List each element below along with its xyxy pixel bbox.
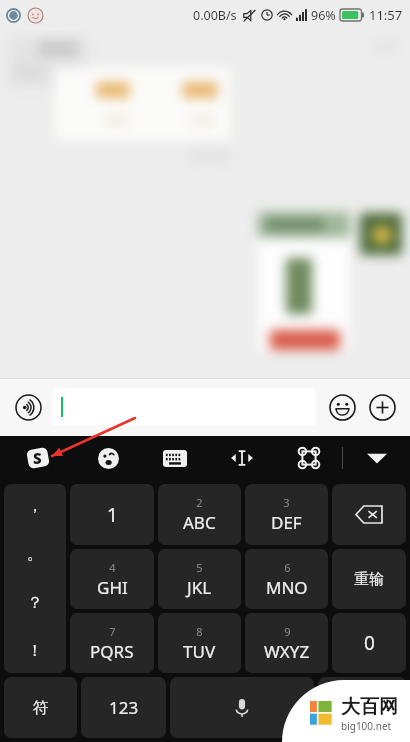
button[interactable]: 7	[70, 613, 154, 673]
staticText: 2	[196, 495, 203, 510]
staticText: 符	[33, 698, 49, 718]
button[interactable]: 符	[4, 677, 77, 738]
button[interactable]: Voice input	[8, 387, 48, 427]
staticText: PQRS	[90, 640, 134, 663]
staticText: big100.net	[341, 719, 392, 733]
staticText: 。	[27, 544, 43, 564]
staticText: 4	[109, 560, 116, 575]
button[interactable]: Keyboard layout	[141, 436, 208, 480]
button[interactable]: Sogou input	[0, 436, 75, 480]
staticText: ！	[27, 641, 43, 661]
button[interactable]: 2	[158, 484, 241, 545]
staticText: WXYZ	[264, 640, 310, 663]
staticText: 3	[283, 495, 290, 510]
staticText: ，	[27, 496, 43, 516]
staticText: 1	[107, 502, 118, 528]
staticText: 大百网	[341, 695, 398, 719]
staticText: 7	[109, 624, 116, 639]
staticText: 123	[109, 696, 139, 719]
button[interactable]: 123	[81, 677, 166, 738]
button[interactable]: Voice input	[170, 677, 314, 738]
staticText: 8	[196, 624, 203, 639]
button[interactable]: 5	[158, 549, 241, 609]
button[interactable]: 1	[70, 484, 154, 545]
button[interactable]: 4	[70, 549, 154, 609]
staticText: 9	[284, 624, 291, 639]
button[interactable]: 8	[158, 613, 241, 673]
button[interactable]: 9	[245, 613, 328, 673]
staticText: 96%	[311, 7, 336, 24]
button[interactable]: Backspace	[332, 484, 406, 545]
button[interactable]: Emoji and stickers	[75, 436, 141, 480]
button[interactable]: Hide keyboard	[343, 436, 410, 480]
staticText: GHI	[97, 576, 128, 599]
button[interactable]: ，	[4, 484, 66, 673]
staticText: DEF	[271, 511, 302, 534]
staticText: 5	[196, 560, 203, 575]
button[interactable]: More	[362, 387, 402, 427]
staticText: 11:57	[369, 6, 403, 24]
button[interactable]: 3	[245, 484, 328, 545]
button[interactable]: Tools	[275, 436, 342, 480]
staticText: JKL	[187, 576, 212, 599]
staticText: MNO	[266, 576, 308, 599]
staticText: ABC	[183, 511, 216, 534]
staticText: S	[33, 448, 42, 468]
staticText: 6	[284, 560, 291, 575]
button[interactable]	[52, 388, 316, 426]
staticText: 重输	[354, 570, 384, 589]
staticText: TUV	[183, 640, 216, 663]
button[interactable]: 重输	[332, 549, 406, 609]
button[interactable]: 6	[245, 549, 328, 609]
button[interactable]: Emoji	[322, 387, 362, 427]
button[interactable]: 0	[332, 613, 406, 673]
button[interactable]: Enter	[318, 677, 406, 738]
staticText: 0.00B/s	[193, 7, 237, 24]
button[interactable]: Move cursor	[208, 436, 275, 480]
staticText: ？	[27, 593, 43, 613]
staticText: 0	[364, 630, 375, 656]
